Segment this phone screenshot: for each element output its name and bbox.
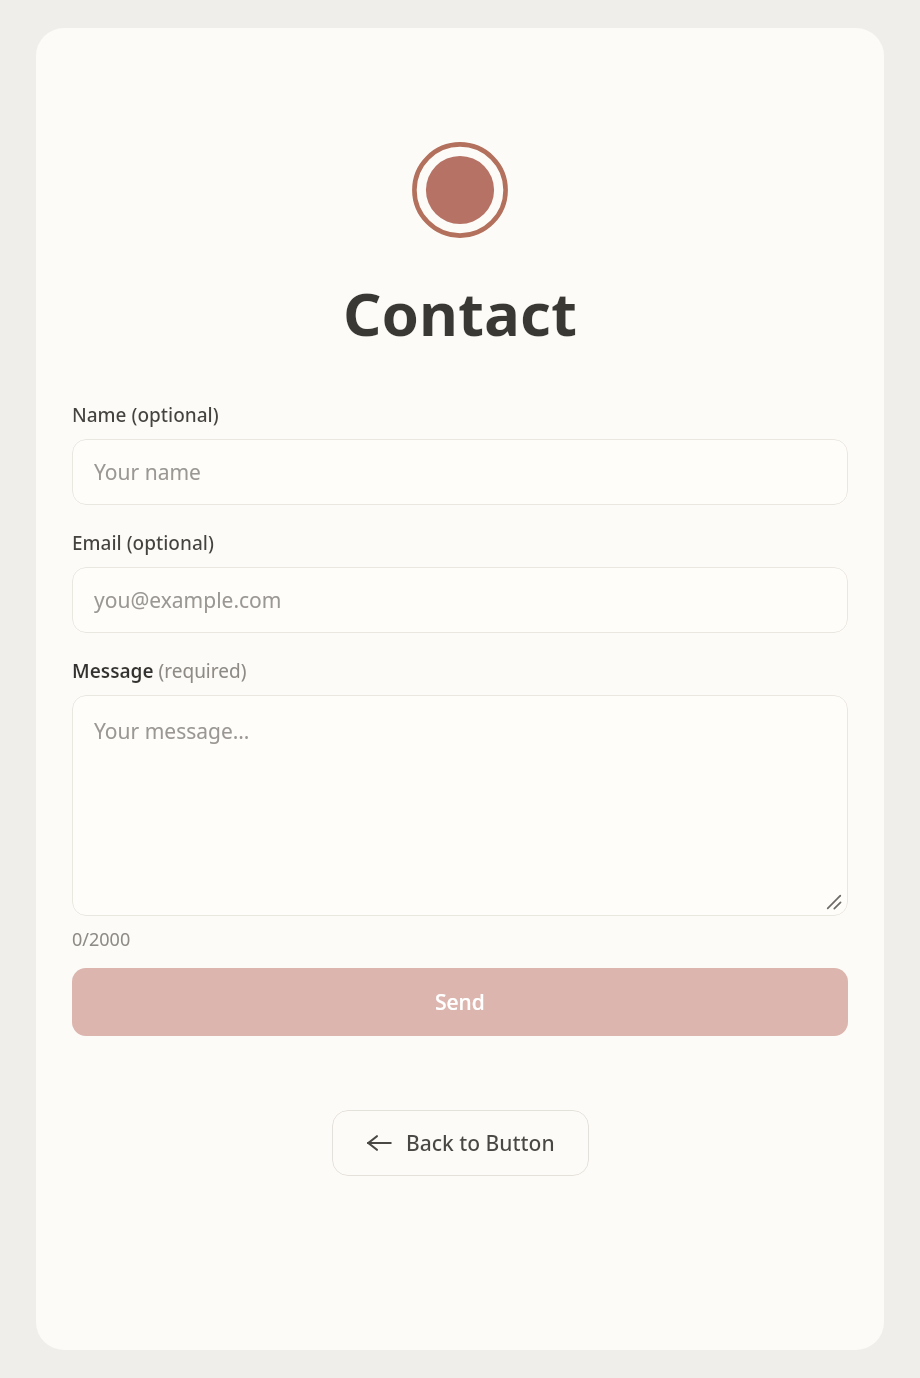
staticText: Back to Button xyxy=(406,1129,555,1158)
staticText: Name (optional) xyxy=(72,402,219,428)
staticText: Your message… xyxy=(94,717,250,746)
staticText: you@example.com xyxy=(94,586,282,615)
button[interactable]: you@example.com xyxy=(72,567,848,633)
staticText: 0/2000 xyxy=(72,927,131,952)
staticText: Message (required) xyxy=(72,658,247,684)
staticText: Contact xyxy=(343,272,577,354)
button[interactable]: Your message… xyxy=(72,695,848,916)
staticText: Send xyxy=(435,988,485,1017)
button[interactable]: Back xyxy=(332,1110,589,1176)
staticText: Your name xyxy=(94,458,201,487)
button[interactable]: Send xyxy=(72,968,848,1036)
other: Back xyxy=(366,1130,392,1156)
button[interactable]: Your name xyxy=(72,439,848,505)
staticText: Email (optional) xyxy=(72,530,214,556)
